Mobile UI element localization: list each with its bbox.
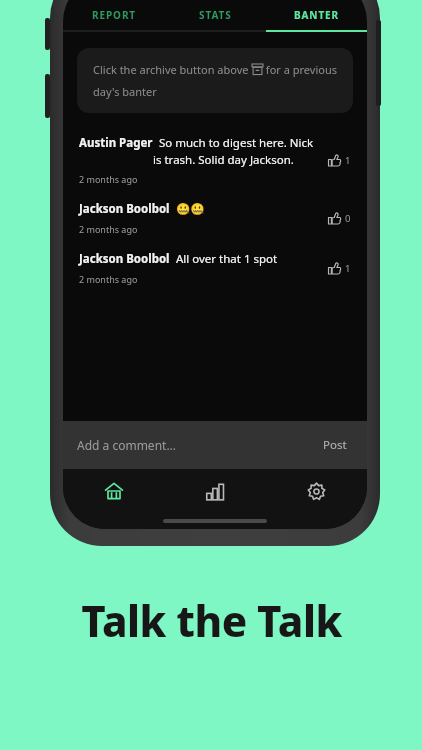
staticText: Austin Pager: [79, 135, 153, 151]
button[interactable]: STATS: [165, 0, 266, 30]
staticText: 2 months ago: [79, 173, 138, 185]
staticText: 0: [345, 212, 351, 225]
button[interactable]: Post: [317, 431, 353, 459]
button[interactable]: Home: [63, 469, 165, 513]
staticText: 2 months ago: [79, 223, 138, 235]
staticText: 2 months ago: [79, 273, 138, 285]
staticText: 1: [345, 262, 351, 275]
staticText: for a previous: [263, 62, 337, 77]
staticText: So much to digest here. Nick is trash. S…: [153, 135, 316, 167]
staticText: Post: [323, 437, 347, 453]
staticText: day's banter: [93, 84, 157, 99]
button[interactable]: Like: [324, 258, 355, 279]
staticText: Click the archive button above: [93, 62, 252, 77]
staticText: Jackson Boolbol: [79, 251, 170, 267]
button[interactable]: Like: [324, 208, 355, 229]
button[interactable]: Jackson Boolbol: [63, 195, 367, 245]
button[interactable]: Jackson Boolbol: [63, 245, 367, 295]
button[interactable]: Click the archive button above: [77, 48, 353, 113]
button[interactable]: REPORT: [63, 0, 165, 30]
button[interactable]: Like: [324, 150, 355, 171]
staticText: 1: [345, 154, 351, 167]
button[interactable]: Stats: [165, 469, 266, 513]
button[interactable]: BANTER: [266, 0, 367, 30]
staticText: STATS: [199, 8, 232, 22]
button[interactable]: Add a comment...: [77, 437, 317, 453]
staticText: Add a comment...: [77, 437, 177, 453]
staticText: Talk the Talk: [81, 592, 342, 649]
staticText: Jackson Boolbol: [79, 201, 170, 217]
button[interactable]: Settings: [266, 469, 367, 513]
staticText: All over that 1 spot: [170, 251, 278, 267]
staticText: BANTER: [294, 8, 340, 22]
button[interactable]: Austin Pager: [63, 129, 367, 195]
staticText: 🤐🤐: [170, 201, 205, 217]
staticText: REPORT: [92, 8, 137, 22]
